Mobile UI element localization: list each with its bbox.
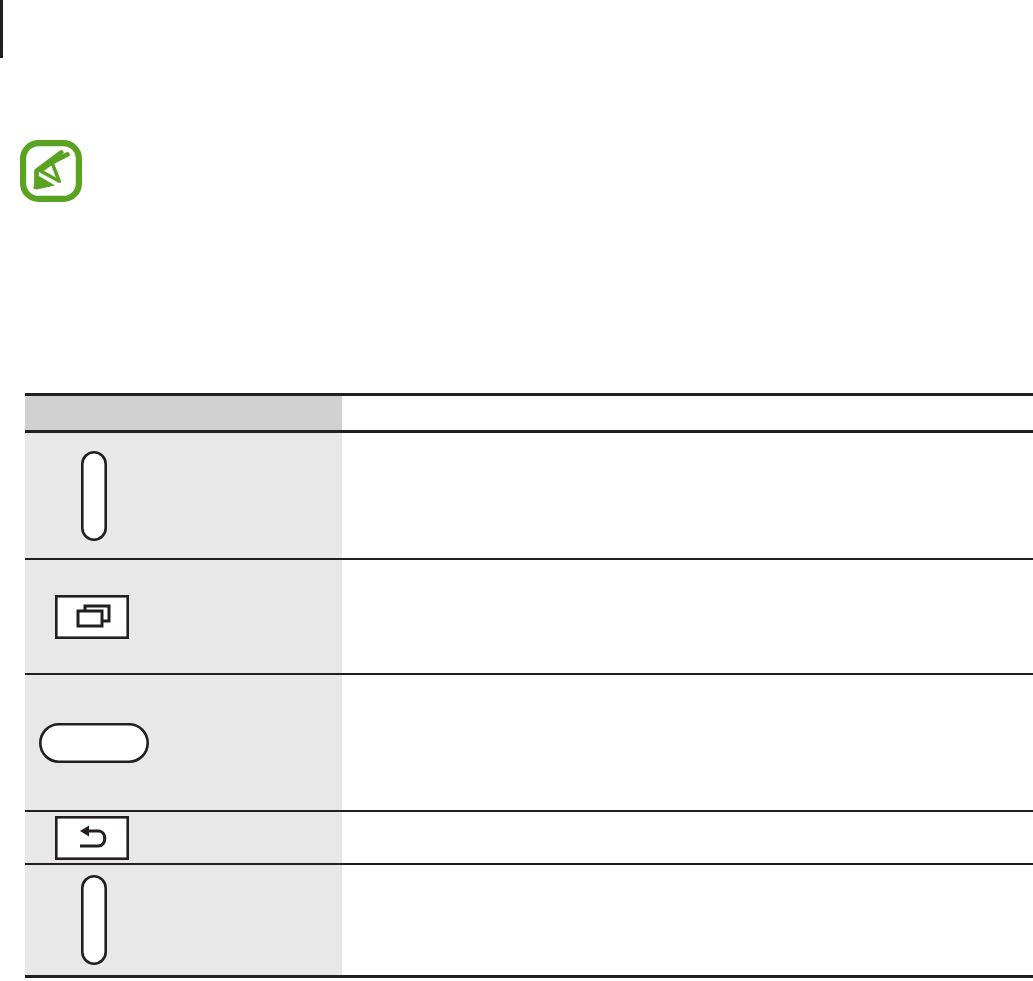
button[interactable]: Recents key <box>25 560 1033 673</box>
other: Power key <box>81 451 107 541</box>
other: Note <box>20 140 82 202</box>
button[interactable]: Home key <box>25 675 1033 810</box>
button[interactable] <box>25 396 1033 430</box>
button[interactable]: Back key <box>25 812 1033 863</box>
other: Volume key <box>81 875 107 965</box>
other: Back key <box>55 816 129 860</box>
button[interactable]: Volume key <box>25 865 1033 975</box>
other: Recents key <box>55 595 129 639</box>
other: Home key <box>39 723 149 763</box>
button[interactable]: Power key <box>25 433 1033 558</box>
